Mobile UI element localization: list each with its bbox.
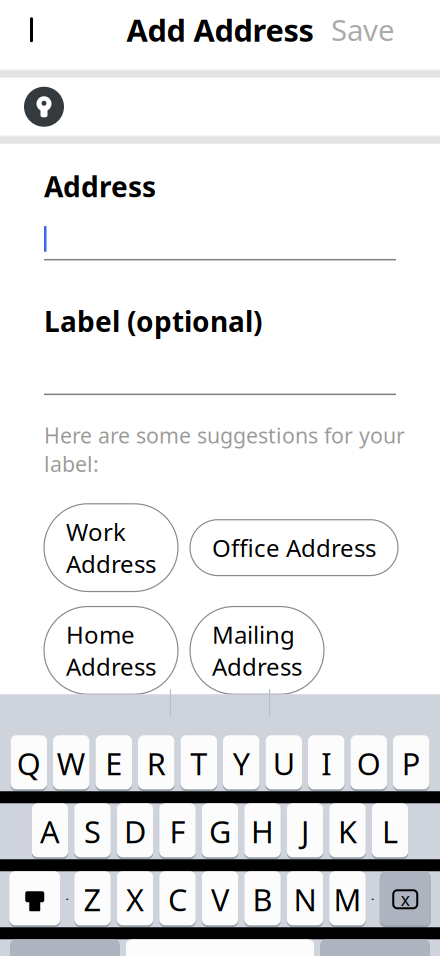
button[interactable]: Mailing Address bbox=[190, 606, 324, 694]
staticText: N bbox=[293, 879, 316, 920]
button[interactable]: R bbox=[138, 735, 174, 791]
staticText: C bbox=[168, 879, 187, 920]
button[interactable]: H bbox=[244, 803, 281, 859]
button[interactable]: X bbox=[117, 871, 153, 927]
staticText: B bbox=[252, 879, 272, 920]
button[interactable]: W bbox=[53, 735, 89, 791]
button[interactable]: space bbox=[126, 939, 314, 956]
staticText: R bbox=[147, 743, 166, 784]
staticText: L bbox=[382, 811, 398, 852]
button[interactable]: D bbox=[117, 803, 153, 859]
staticText: Z bbox=[83, 879, 101, 920]
staticText: F bbox=[169, 811, 185, 852]
button[interactable]: S bbox=[74, 803, 111, 859]
staticText: I bbox=[321, 743, 331, 784]
staticText: T bbox=[190, 743, 207, 784]
staticText: x bbox=[401, 888, 410, 911]
button[interactable]: O bbox=[350, 735, 387, 791]
button[interactable]: Q bbox=[10, 735, 47, 791]
button[interactable]: 123 bbox=[10, 939, 120, 956]
button[interactable]: K bbox=[329, 803, 366, 859]
staticText: P bbox=[402, 743, 421, 784]
button[interactable]: L bbox=[372, 803, 408, 859]
staticText: Address bbox=[44, 168, 156, 205]
staticText: Work Address bbox=[66, 516, 156, 579]
button[interactable]: V bbox=[202, 871, 238, 927]
button[interactable]: G bbox=[202, 803, 238, 859]
button[interactable]: N bbox=[287, 871, 323, 927]
button[interactable]: Back bbox=[8, 4, 60, 56]
button[interactable]: U bbox=[265, 735, 302, 791]
staticText: A bbox=[40, 811, 60, 852]
staticText: S bbox=[84, 811, 101, 852]
button[interactable]: T bbox=[180, 735, 217, 791]
staticText: K bbox=[338, 811, 357, 852]
staticText: Add Address bbox=[126, 9, 313, 50]
button[interactable] bbox=[44, 354, 396, 395]
staticText: J bbox=[301, 811, 309, 852]
staticText: Mailing Address bbox=[212, 618, 302, 682]
staticText: X bbox=[126, 879, 144, 920]
button[interactable] bbox=[44, 219, 396, 260]
button[interactable]: Z bbox=[74, 871, 111, 927]
button[interactable]: Save bbox=[315, 0, 411, 59]
button[interactable]: Office Address bbox=[190, 520, 398, 576]
button[interactable]: Work Address bbox=[44, 504, 178, 591]
button[interactable]: B bbox=[244, 871, 281, 927]
button[interactable]: M bbox=[329, 871, 366, 927]
button[interactable]: I bbox=[308, 735, 344, 791]
staticText: M bbox=[333, 879, 361, 920]
button[interactable]: Delete bbox=[380, 871, 431, 927]
staticText: Here are some suggestions for your label… bbox=[44, 421, 405, 478]
button[interactable]: Shift bbox=[9, 871, 60, 927]
button[interactable]: F bbox=[159, 803, 196, 859]
staticText: Save bbox=[331, 10, 395, 49]
button[interactable]: E bbox=[95, 735, 132, 791]
staticText: U bbox=[273, 743, 295, 784]
staticText: G bbox=[209, 811, 231, 852]
staticText: Office Address bbox=[212, 532, 376, 564]
staticText: W bbox=[57, 743, 86, 784]
button[interactable]: Y bbox=[223, 735, 259, 791]
staticText: H bbox=[251, 811, 274, 852]
button[interactable]: Home Address bbox=[44, 606, 178, 694]
staticText: Y bbox=[233, 743, 250, 784]
staticText: E bbox=[105, 743, 122, 784]
staticText: O bbox=[357, 743, 381, 784]
button[interactable]: A bbox=[32, 803, 68, 859]
staticText: V bbox=[211, 879, 229, 920]
button[interactable]: C bbox=[159, 871, 196, 927]
staticText: Label (optional) bbox=[44, 302, 262, 340]
button[interactable]: Pick location on map bbox=[18, 81, 70, 133]
button[interactable]: P bbox=[393, 735, 429, 791]
button[interactable]: return bbox=[320, 939, 430, 956]
staticText: Home Address bbox=[66, 618, 156, 682]
staticText: D bbox=[124, 811, 146, 852]
button[interactable]: J bbox=[287, 803, 323, 859]
staticText: Q bbox=[17, 743, 41, 784]
